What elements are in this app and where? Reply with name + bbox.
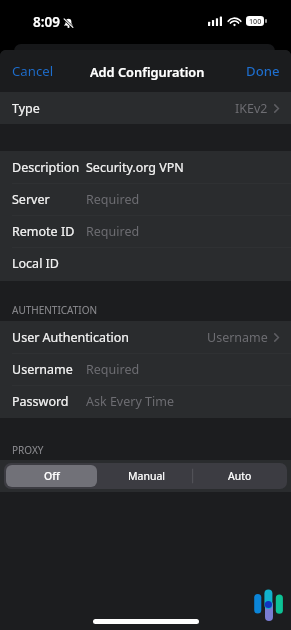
staticText: Remote ID <box>12 223 75 240</box>
staticText: Add Configuration <box>90 63 205 80</box>
button[interactable]: Off <box>6 465 97 487</box>
staticText: PROXY <box>12 443 44 457</box>
staticText: User Authentication <box>12 329 130 346</box>
staticText: Password <box>12 393 69 410</box>
button[interactable]: Local ID <box>0 247 291 279</box>
button[interactable]: Cancel <box>0 52 66 90</box>
staticText: Auto <box>228 469 252 483</box>
staticText: Server <box>12 191 50 208</box>
staticText: Username <box>12 361 73 378</box>
staticText: Done <box>246 62 280 80</box>
button[interactable]: Remote ID <box>0 215 291 247</box>
button[interactable]: Username <box>0 353 291 385</box>
staticText: 8:09 <box>33 13 60 31</box>
staticText: Local ID <box>12 255 59 272</box>
staticText: Manual <box>128 469 165 483</box>
staticText: Ask Every Time <box>86 393 174 410</box>
button[interactable]: Manual <box>99 463 193 489</box>
button[interactable]: Auto <box>193 463 287 489</box>
staticText: Type <box>12 100 40 117</box>
staticText: 100 <box>249 16 262 26</box>
button[interactable]: Description <box>0 151 291 183</box>
staticText: IKEv2 <box>235 100 268 117</box>
button[interactable]: Password <box>0 385 291 417</box>
staticText: Username <box>207 329 268 346</box>
staticText: Off <box>44 469 60 483</box>
staticText: Security.org VPN <box>86 159 184 176</box>
button[interactable]: Done <box>234 52 291 90</box>
staticText: Required <box>86 191 140 208</box>
button[interactable]: Type <box>0 92 291 124</box>
staticText: Required <box>86 223 140 240</box>
other: Security.org logo <box>248 588 285 622</box>
staticText: Description <box>12 159 80 176</box>
staticText: AUTHENTICATION <box>12 303 98 317</box>
button[interactable]: Server <box>0 183 291 215</box>
button[interactable]: User Authentication <box>0 321 291 353</box>
staticText: Required <box>86 361 140 378</box>
staticText: Cancel <box>12 62 54 80</box>
